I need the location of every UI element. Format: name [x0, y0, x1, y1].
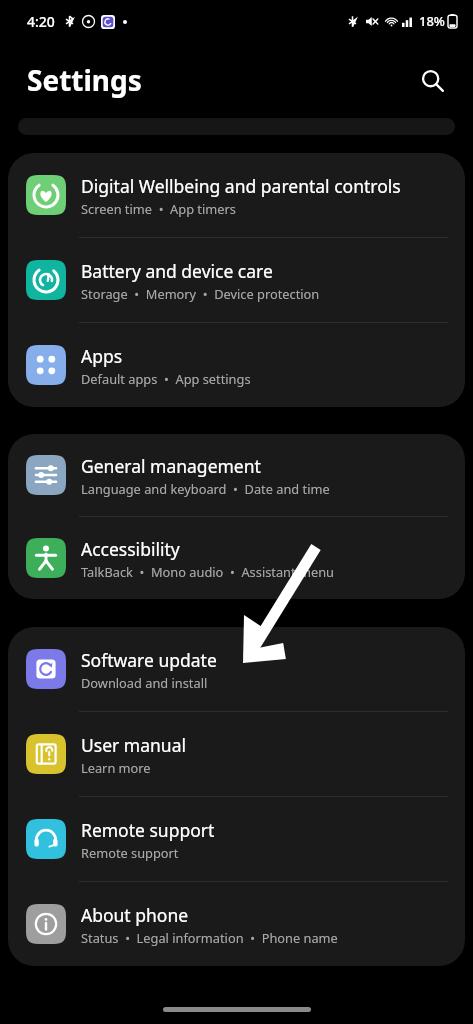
staticText: 18%: [419, 12, 445, 30]
staticText: Settings: [27, 61, 142, 99]
staticText: Status • Legal information • Phone name: [81, 929, 338, 946]
staticText: Accessibility: [81, 537, 180, 561]
button[interactable]: About phone: [8, 882, 465, 966]
staticText: Language and keyboard • Date and time: [81, 480, 330, 497]
staticText: Software update: [81, 648, 217, 672]
button[interactable]: Software update: [8, 627, 465, 711]
button[interactable]: Accessibility: [8, 517, 465, 599]
button[interactable]: Digital Wellbeing and parental controls: [8, 153, 465, 237]
staticText: Digital Wellbeing and parental controls: [81, 174, 401, 198]
staticText: Apps: [81, 344, 123, 368]
button[interactable]: Remote support: [8, 797, 465, 881]
button[interactable]: Battery and device care: [8, 238, 465, 322]
staticText: Learn more: [81, 759, 151, 776]
button[interactable]: General management: [8, 434, 465, 516]
staticText: General management: [81, 454, 261, 478]
staticText: Remote support: [81, 844, 179, 861]
staticText: Download and install: [81, 674, 208, 691]
staticText: TalkBack • Mono audio • Assistant menu: [81, 563, 334, 580]
staticText: Remote support: [81, 818, 215, 842]
button[interactable]: Search settings: [411, 59, 453, 101]
staticText: User manual: [81, 733, 186, 757]
button[interactable]: User manual: [8, 712, 465, 796]
staticText: 4:20: [27, 12, 55, 31]
staticText: Battery and device care: [81, 259, 273, 283]
staticText: About phone: [81, 903, 189, 927]
staticText: Screen time • App timers: [81, 200, 236, 217]
button[interactable]: Apps: [8, 323, 465, 407]
staticText: Default apps • App settings: [81, 370, 251, 387]
staticText: Storage • Memory • Device protection: [81, 285, 320, 302]
